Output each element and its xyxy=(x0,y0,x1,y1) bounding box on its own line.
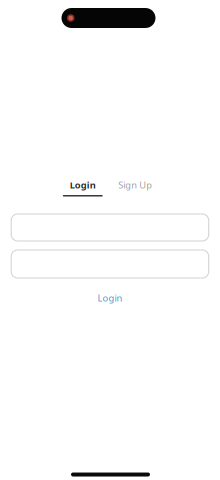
button[interactable]: Login xyxy=(90,292,130,304)
button[interactable]: Sign Up xyxy=(118,179,153,195)
staticText: Login xyxy=(97,292,122,304)
button[interactable]: Password xyxy=(11,250,209,278)
staticText: Login xyxy=(70,179,96,191)
button[interactable]: Login xyxy=(63,179,103,196)
button[interactable]: Email xyxy=(11,214,209,241)
staticText: Sign Up xyxy=(118,179,152,191)
